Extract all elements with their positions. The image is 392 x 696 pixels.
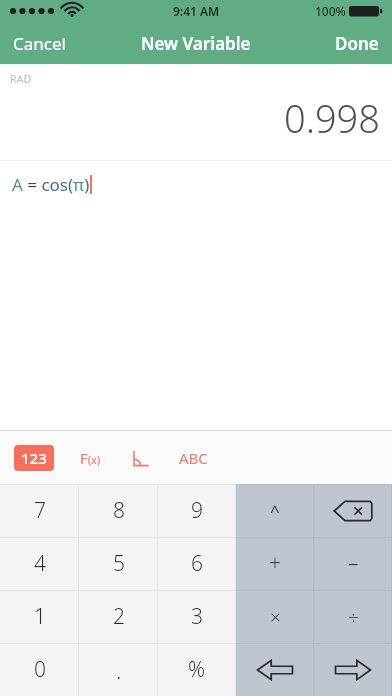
button[interactable]: . (79, 643, 158, 696)
staticText: 9 (191, 496, 203, 525)
staticText: Cancel (13, 32, 66, 55)
staticText: 9:41 AM (173, 3, 220, 19)
staticText: × (270, 604, 281, 630)
button[interactable]: 5 (79, 537, 158, 590)
button[interactable]: 2 (79, 590, 158, 643)
button[interactable]: 3 (158, 590, 236, 643)
staticText: 123 (21, 448, 47, 468)
staticText: 4 (34, 549, 46, 578)
button[interactable]: ^ (236, 484, 314, 537)
button[interactable]: + (236, 537, 314, 590)
button[interactable]: 4 (0, 537, 79, 590)
button[interactable]: 9 (158, 484, 236, 537)
button[interactable]: 123 (14, 445, 54, 471)
button[interactable]: 1 (0, 590, 79, 643)
staticText: F(x) (80, 448, 101, 468)
staticText: ^ (270, 499, 280, 522)
staticText: . (116, 655, 122, 685)
staticText: + (269, 549, 281, 578)
staticText: 5 (113, 549, 125, 578)
button[interactable]: Move cursor left (236, 643, 314, 696)
staticText: % (188, 655, 206, 684)
staticText: 3 (191, 602, 203, 631)
button[interactable]: Cancel (0, 24, 79, 63)
staticText: 1 (34, 602, 46, 631)
button[interactable]: – (314, 537, 392, 590)
button[interactable]: F(x) (74, 442, 107, 474)
button[interactable]: Move cursor right (314, 643, 392, 696)
button[interactable]: % (158, 643, 236, 696)
staticText: A = cos(π) (12, 173, 90, 196)
staticText: – (348, 549, 359, 578)
staticText: Done (335, 32, 379, 55)
staticText: 0.998 (0, 92, 380, 144)
staticText: ABC (179, 448, 208, 468)
staticText: 100% (315, 3, 346, 19)
staticText: New Variable (141, 32, 251, 55)
staticText: 0 (34, 655, 46, 684)
button[interactable]: × (236, 590, 314, 643)
staticText: 2 (113, 602, 125, 631)
button[interactable]: Done (322, 24, 392, 63)
button[interactable]: 0 (0, 643, 79, 696)
button[interactable]: 8 (79, 484, 158, 537)
staticText: ÷ (348, 604, 359, 630)
button[interactable]: ABC (173, 442, 214, 474)
button[interactable]: 6 (158, 537, 236, 590)
button[interactable]: Backspace (314, 484, 392, 537)
button[interactable]: 7 (0, 484, 79, 537)
staticText: 8 (113, 496, 125, 525)
staticText: RAD (10, 72, 32, 86)
staticText: 7 (34, 496, 46, 525)
button[interactable]: ÷ (314, 590, 392, 643)
button[interactable]: Angle functions (125, 443, 155, 473)
staticText: 6 (191, 549, 203, 578)
